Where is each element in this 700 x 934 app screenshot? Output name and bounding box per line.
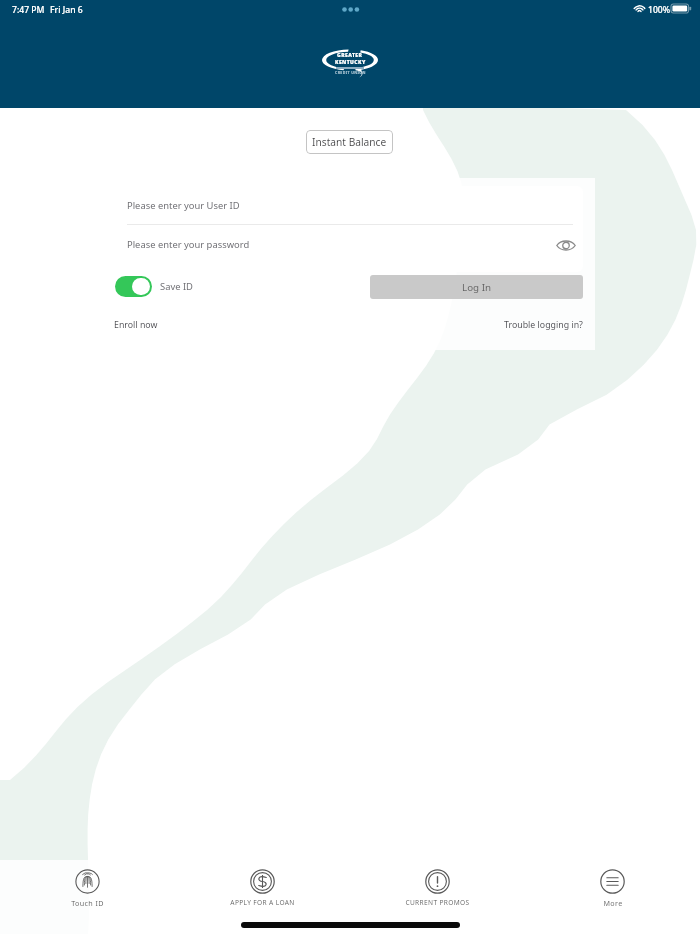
button[interactable]: Trouble logging in? <box>504 319 583 331</box>
staticText: CREDIT UNION <box>335 70 366 75</box>
staticText: KENTUCKY <box>335 59 366 66</box>
staticText: Enroll now <box>114 319 158 331</box>
staticText: 100% <box>648 4 671 16</box>
staticText: Please enter your User ID <box>127 199 240 212</box>
staticText: Trouble logging in? <box>504 319 583 331</box>
staticText: CURRENT PROMOS <box>405 898 470 907</box>
button[interactable]: Show password <box>553 232 579 258</box>
button[interactable]: Instant Balance <box>306 130 393 154</box>
staticText: Instant Balance <box>312 135 387 149</box>
staticText: Please enter your password <box>127 238 250 251</box>
button[interactable]: CURRENT PROMOS <box>350 860 525 907</box>
button[interactable]: Enroll now <box>114 319 158 331</box>
button[interactable]: Log In <box>370 275 583 299</box>
staticText: Log In <box>462 281 492 294</box>
staticText: Touch ID <box>71 898 104 908</box>
staticText: GREATER <box>337 52 363 59</box>
button[interactable]: Save ID <box>115 276 193 297</box>
staticText: More <box>603 898 623 908</box>
button[interactable]: More <box>525 860 700 908</box>
staticText: APPLY FOR A LOAN <box>230 898 295 907</box>
button[interactable]: APPLY FOR A LOAN <box>175 860 350 907</box>
staticText: Save ID <box>160 280 193 293</box>
button[interactable]: Touch ID <box>0 860 175 908</box>
staticText: 7:47 PM <box>12 4 45 16</box>
staticText: Fri Jan 6 <box>50 4 83 16</box>
